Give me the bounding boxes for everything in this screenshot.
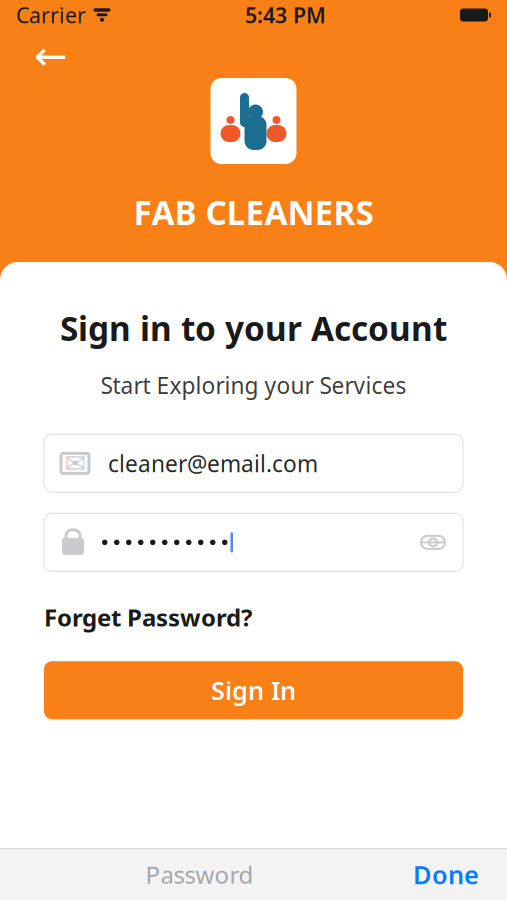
staticText: Start Exploring your Services [100, 370, 406, 400]
staticText: 5:43 PM [245, 1, 326, 29]
staticText: Carrier [16, 1, 86, 29]
staticText: ← [34, 33, 68, 79]
staticText: ✉ [64, 449, 85, 478]
button[interactable]: Show password [413, 522, 453, 562]
button[interactable]: Forget Password? [44, 601, 252, 633]
staticText: Sign in to your Account [60, 306, 447, 350]
staticText: cleaner@email.com [108, 448, 318, 478]
staticText: Password [145, 859, 253, 890]
staticText: Sign In [211, 673, 296, 707]
button[interactable]: Sign In [44, 661, 463, 719]
button[interactable]: Done [399, 850, 493, 899]
staticText: Done [413, 858, 479, 891]
staticText: Forget Password? [44, 601, 252, 633]
staticText: FAB CLEANERS [133, 190, 373, 234]
button[interactable]: Back [24, 36, 78, 76]
